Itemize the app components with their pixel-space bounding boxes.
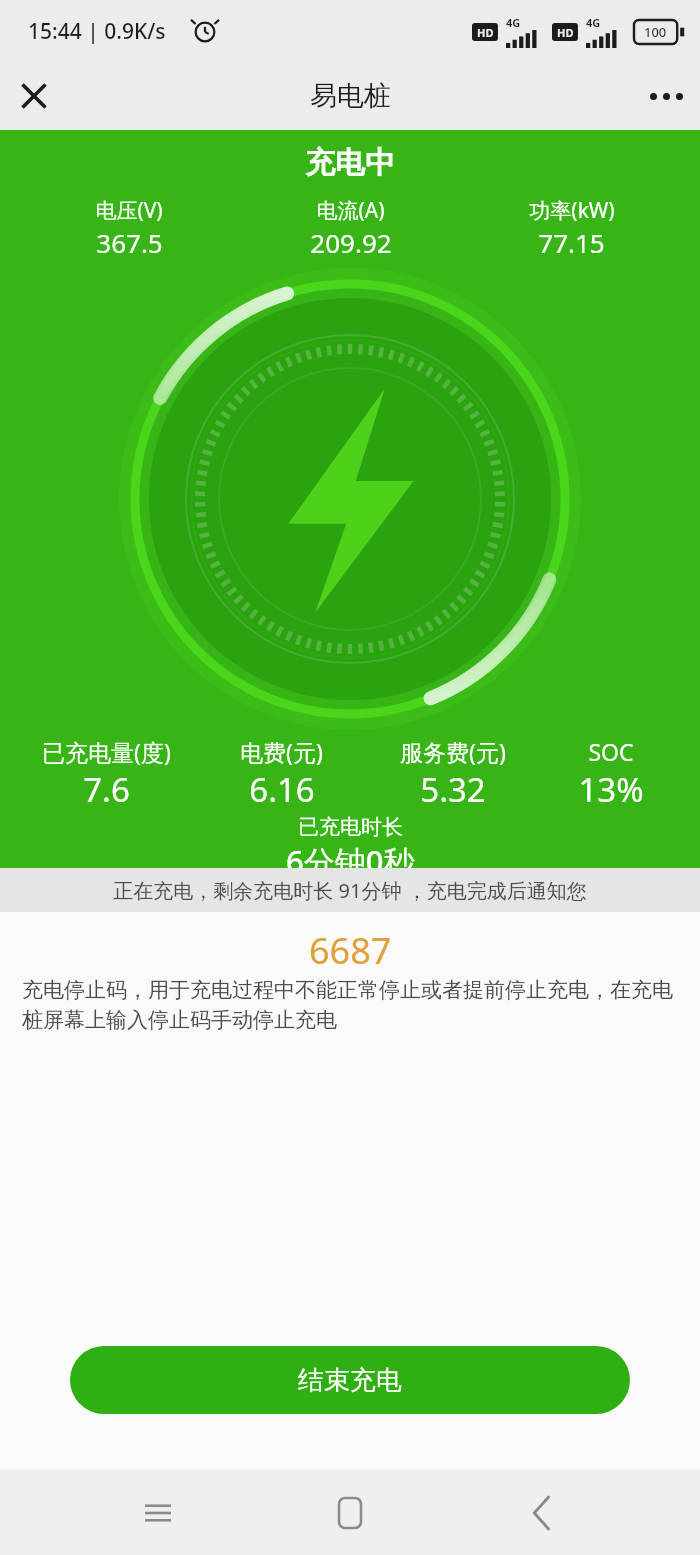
staticText: 正在充电，剩余充电时长 91分钟 ，充电完成后通知您 [113, 877, 587, 904]
staticText: HD [477, 25, 494, 40]
staticText: 6687 [309, 926, 392, 975]
staticText: 服务费(元) [400, 736, 506, 767]
staticText: 电压(V) [95, 196, 163, 225]
staticText: 6分钟0秒 [286, 840, 415, 868]
staticText: 15:44 | 0.9K/s [28, 17, 166, 46]
staticText: 367.5 [96, 225, 163, 260]
staticText: 4G [506, 15, 521, 30]
staticText: 100 [644, 23, 667, 41]
staticText: 电费(元) [240, 736, 323, 767]
staticText: 77.15 [538, 225, 605, 260]
staticText: 4G [586, 15, 601, 30]
staticText: HD [557, 25, 574, 40]
staticText: 209.92 [310, 225, 392, 260]
staticText: 13% [578, 767, 644, 812]
button[interactable]: Recent apps [130, 1485, 186, 1541]
staticText: 5.32 [420, 767, 486, 812]
button[interactable]: Home [322, 1485, 378, 1541]
button[interactable]: Back [514, 1485, 570, 1541]
staticText: 6.16 [249, 767, 315, 812]
staticText: 7.6 [83, 767, 130, 812]
button[interactable]: Close [0, 62, 68, 130]
staticText: SOC [588, 736, 634, 767]
staticText: 已充电时长 [298, 814, 403, 840]
staticText: 充电停止码，用于充电过程中不能正常停止或者提前停止充电，在充电桩屏幕上输入停止码… [22, 977, 678, 1033]
button[interactable]: More options [632, 62, 700, 130]
staticText: 充电中 [305, 144, 395, 182]
staticText: 已充电量(度) [42, 736, 171, 767]
staticText: 易电桩 [310, 79, 391, 113]
staticText: 功率(kW) [529, 196, 615, 225]
button[interactable]: 结束充电 [70, 1346, 630, 1414]
staticText: 电流(A) [316, 196, 385, 225]
staticText: 结束充电 [298, 1364, 402, 1397]
